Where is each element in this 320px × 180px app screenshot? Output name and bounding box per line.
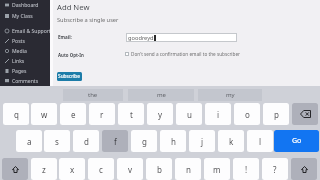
- staticText: Email & Support: [12, 28, 50, 35]
- staticText: goodreyd: [128, 34, 154, 42]
- button[interactable]: Posts: [0, 36, 50, 46]
- staticText: e: [71, 109, 76, 120]
- staticText: u: [187, 109, 192, 120]
- staticText: g: [142, 136, 147, 147]
- staticText: Posts: [12, 38, 25, 45]
- staticText: z: [42, 164, 46, 175]
- staticText: Media: [12, 48, 27, 55]
- button[interactable]: Comments: [0, 76, 50, 86]
- button[interactable]: l: [247, 130, 273, 152]
- button[interactable]: c: [88, 158, 114, 180]
- button[interactable]: !: [233, 158, 259, 180]
- button[interactable]: x: [59, 158, 85, 180]
- button[interactable]: Subscribe: [57, 72, 82, 81]
- button[interactable]: the: [63, 89, 123, 101]
- button[interactable]: My Class: [0, 11, 50, 21]
- button[interactable]: ?: [262, 158, 288, 180]
- button[interactable]: Email & Support: [0, 26, 50, 36]
- staticText: Subscribe a single user: [57, 16, 119, 24]
- button[interactable]: z: [31, 158, 57, 180]
- staticText: o: [245, 109, 250, 120]
- button[interactable]: u: [176, 103, 202, 125]
- button[interactable]: i: [205, 103, 231, 125]
- staticText: h: [171, 136, 176, 147]
- button[interactable]: k: [218, 130, 244, 152]
- button[interactable]: Backspace: [292, 103, 318, 125]
- button[interactable]: Go: [274, 130, 319, 152]
- staticText: q: [14, 109, 19, 120]
- staticText: n: [186, 164, 191, 175]
- staticText: j: [201, 136, 204, 147]
- staticText: Dashboard: [12, 2, 39, 9]
- staticText: b: [157, 164, 162, 175]
- button[interactable]: my: [198, 89, 262, 101]
- button[interactable]: Pages: [0, 66, 50, 76]
- button[interactable]: Links: [0, 56, 50, 66]
- staticText: !: [245, 164, 248, 175]
- staticText: Links: [12, 58, 25, 65]
- button[interactable]: y: [147, 103, 173, 125]
- button[interactable]: f: [102, 130, 128, 152]
- button[interactable]: r: [89, 103, 115, 125]
- staticText: w: [41, 109, 48, 120]
- button[interactable]: Media: [0, 46, 50, 56]
- staticText: My Class: [12, 13, 33, 20]
- button[interactable]: w: [31, 103, 57, 125]
- button[interactable]: Shift: [291, 158, 317, 180]
- staticText: Pages: [12, 68, 27, 75]
- staticText: Email:: [58, 34, 72, 40]
- button[interactable]: n: [175, 158, 201, 180]
- staticText: a: [27, 136, 32, 147]
- staticText: l: [259, 136, 262, 147]
- button[interactable]: a: [16, 130, 42, 152]
- staticText: Don't send a confirmation email to the s…: [131, 51, 241, 57]
- button[interactable]: d: [73, 130, 99, 152]
- staticText: Go: [292, 136, 302, 146]
- staticText: me: [157, 91, 166, 99]
- staticText: v: [128, 164, 133, 175]
- button[interactable]: t: [118, 103, 144, 125]
- button[interactable]: Shift: [2, 158, 28, 180]
- staticText: f: [114, 136, 117, 147]
- staticText: Add New: [57, 2, 90, 12]
- staticText: s: [55, 136, 59, 147]
- staticText: t: [130, 109, 133, 120]
- button[interactable]: v: [117, 158, 143, 180]
- staticText: Subscribe: [58, 73, 81, 80]
- button[interactable]: e: [60, 103, 86, 125]
- staticText: ?: [273, 164, 277, 175]
- staticText: k: [229, 136, 234, 147]
- button[interactable]: o: [234, 103, 260, 125]
- button[interactable]: q: [3, 103, 29, 125]
- button[interactable]: m: [204, 158, 230, 180]
- staticText: Comments: [12, 78, 39, 85]
- staticText: m: [213, 164, 221, 175]
- staticText: c: [99, 164, 103, 175]
- staticText: y: [158, 109, 163, 120]
- button[interactable]: j: [189, 130, 215, 152]
- staticText: x: [70, 164, 75, 175]
- staticText: i: [217, 109, 220, 120]
- button[interactable]: h: [160, 130, 186, 152]
- button[interactable]: me: [128, 89, 194, 101]
- button[interactable]: g: [131, 130, 157, 152]
- button[interactable]: b: [146, 158, 172, 180]
- button[interactable]: s: [44, 130, 70, 152]
- staticText: the: [88, 91, 98, 99]
- staticText: Auto Opt-In: [58, 52, 84, 58]
- staticText: p: [274, 109, 279, 120]
- button[interactable]: Dashboard: [0, 0, 50, 10]
- button[interactable]: p: [263, 103, 289, 125]
- staticText: r: [100, 109, 104, 120]
- staticText: d: [84, 136, 89, 147]
- button[interactable]: [125, 52, 129, 56]
- staticText: my: [226, 91, 235, 99]
